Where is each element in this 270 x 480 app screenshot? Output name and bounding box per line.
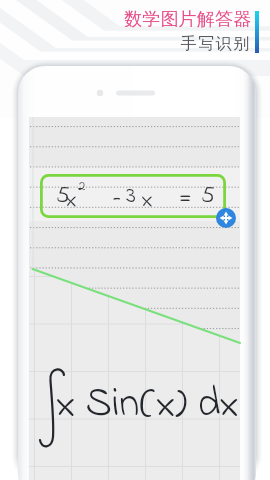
staticText: x xyxy=(66,183,77,218)
staticText: x Sin(x) dx xyxy=(57,375,239,435)
button[interactable] xyxy=(40,174,226,218)
staticText: – xyxy=(113,181,121,219)
button[interactable]: Move selection xyxy=(216,208,236,228)
staticText: x xyxy=(142,183,153,218)
staticText: 5 xyxy=(56,179,70,214)
staticText: 3 xyxy=(126,179,136,214)
staticText: 手写识别 xyxy=(180,34,250,54)
staticText: 2 xyxy=(78,175,86,197)
staticText: 数学图片解答器 xyxy=(124,8,252,31)
staticText: 5 xyxy=(201,179,215,214)
staticText: = xyxy=(179,181,192,219)
